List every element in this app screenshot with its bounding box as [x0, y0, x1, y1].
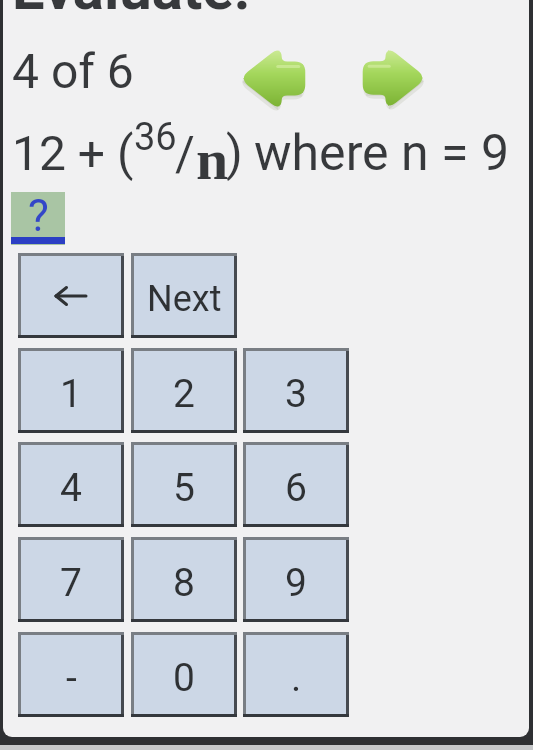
staticText: 36 [134, 115, 177, 160]
staticText: 3 [285, 371, 307, 417]
staticText: . [291, 655, 302, 701]
staticText: 7 [60, 560, 82, 606]
staticText: Evaluate: [12, 0, 251, 23]
staticText: 9 [285, 560, 307, 606]
button[interactable] [242, 47, 304, 110]
staticText: n [196, 127, 229, 191]
staticText: 8 [173, 560, 195, 606]
staticText: 5 [173, 465, 195, 511]
button[interactable]: 3 [243, 348, 349, 433]
button[interactable]: 4 [18, 442, 124, 527]
button[interactable]: 6 [243, 442, 349, 527]
staticText: 0 [173, 655, 195, 701]
button[interactable]: 0 [131, 632, 237, 717]
staticText: 2 [173, 371, 195, 417]
button[interactable]: 1 [18, 348, 124, 433]
staticText: 6 [285, 465, 307, 511]
button[interactable] [364, 47, 424, 109]
staticText: - [66, 655, 77, 701]
staticText: 4 of 6 [12, 43, 134, 99]
button[interactable] [18, 253, 124, 338]
button[interactable]: 2 [131, 348, 237, 433]
staticText: ) [226, 125, 243, 181]
button[interactable]: 9 [243, 537, 349, 622]
button[interactable]: 8 [131, 537, 237, 622]
staticText: / [175, 125, 195, 181]
button[interactable]: 5 [131, 442, 237, 527]
button[interactable]: - [18, 632, 124, 717]
button[interactable]: . [243, 632, 349, 717]
staticText: ? [28, 190, 49, 242]
staticText: 12 + ( [12, 125, 134, 181]
button[interactable]: 7 [18, 537, 124, 622]
staticText: 4 [60, 465, 82, 511]
staticText: 1 [60, 371, 82, 417]
button[interactable]: Next [131, 253, 237, 338]
staticText: where n = 9 [254, 124, 509, 183]
staticText: Next [147, 278, 222, 320]
button[interactable]: ? [11, 192, 65, 245]
